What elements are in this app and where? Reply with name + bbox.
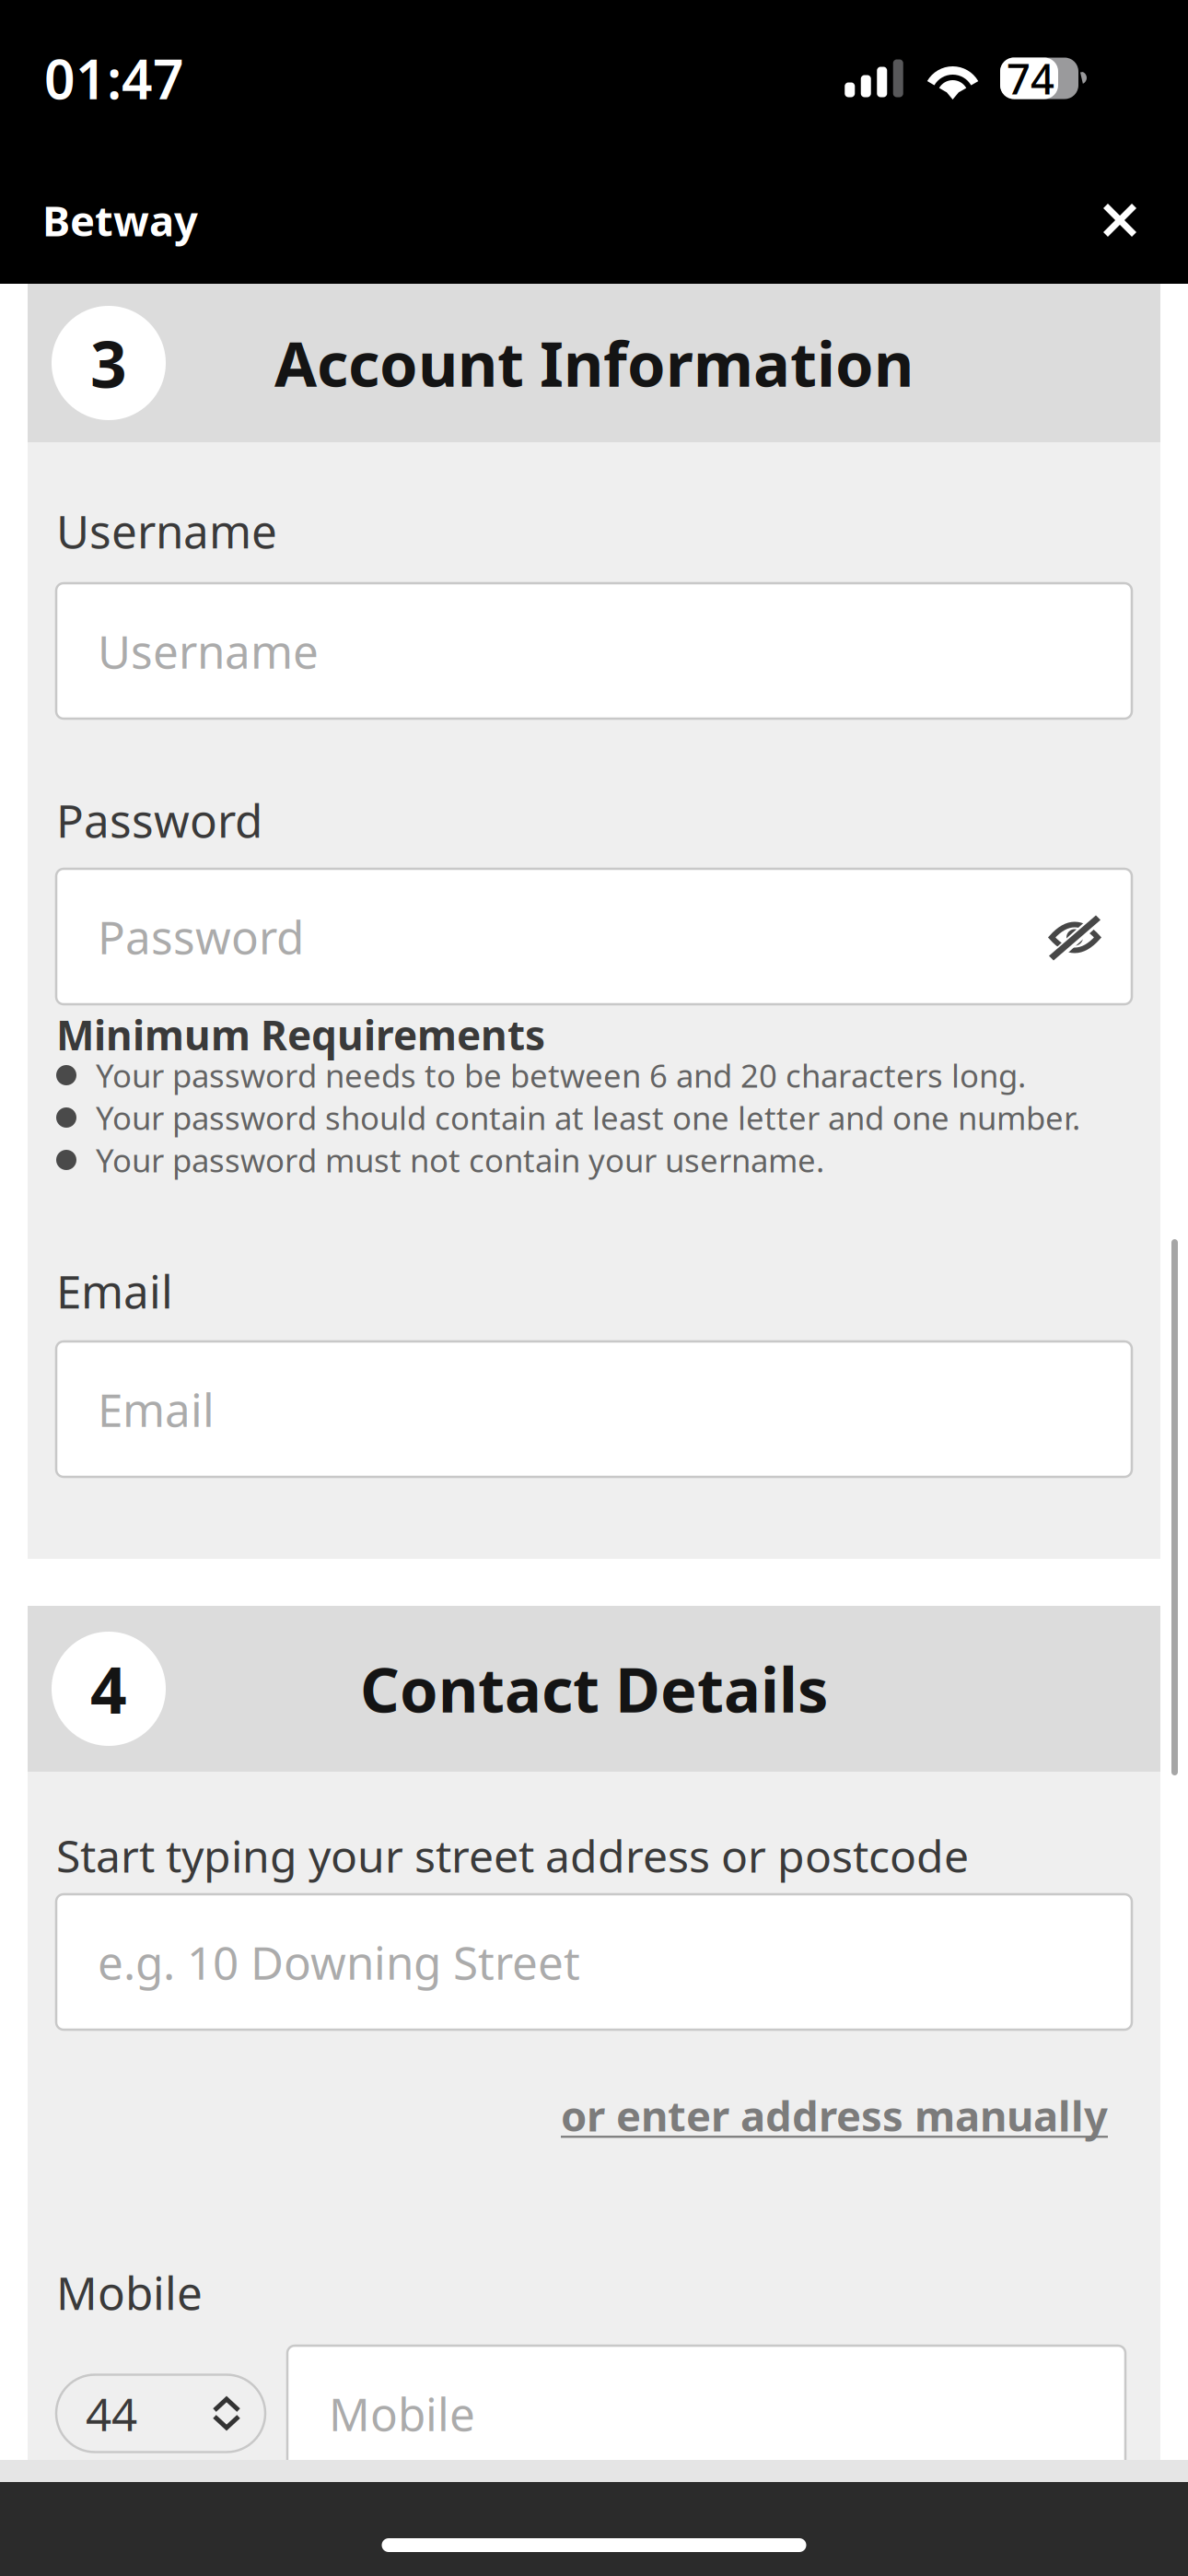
staticText: 01:47 xyxy=(44,42,184,114)
staticText: 44 xyxy=(86,2383,137,2444)
staticText: Email xyxy=(98,1379,215,1439)
button[interactable]: Close xyxy=(1076,176,1164,264)
staticText: Your password needs to be between 6 and … xyxy=(96,1054,1026,1096)
button[interactable]: Username xyxy=(56,583,1132,719)
staticText: Your password should contain at least on… xyxy=(96,1096,1080,1139)
button[interactable]: Mobile xyxy=(287,2346,1125,2481)
button[interactable]: or enter address manually xyxy=(561,2087,1108,2144)
staticText: e.g. 10 Downing Street xyxy=(98,1932,580,1992)
staticText: Mobile xyxy=(329,2383,475,2444)
staticText: Mobile xyxy=(56,2262,203,2322)
staticText: Username xyxy=(56,500,277,561)
staticText: Start typing your street address or post… xyxy=(56,1826,969,1885)
staticText: Contact Details xyxy=(360,1648,828,1729)
staticText: Password xyxy=(56,790,262,850)
staticText: Account Information xyxy=(274,322,914,404)
staticText: Password xyxy=(98,906,304,967)
staticText: or enter address manually xyxy=(561,2088,1108,2143)
staticText: 3 xyxy=(90,321,127,405)
staticText: Email xyxy=(56,1261,173,1321)
button[interactable]: e.g. 10 Downing Street xyxy=(56,1894,1132,2030)
staticText: 4 xyxy=(90,1646,127,1731)
button[interactable]: Email xyxy=(56,1341,1132,1477)
staticText: Betway xyxy=(42,192,198,248)
staticText: Your password must not contain your user… xyxy=(96,1139,824,1181)
staticText: Minimum Requirements xyxy=(56,1008,545,1062)
staticText: Username xyxy=(98,621,319,681)
button[interactable]: Dialling code 44 xyxy=(56,2375,265,2452)
button[interactable]: Password xyxy=(56,869,1132,1004)
staticText: 74 xyxy=(1007,51,1054,106)
